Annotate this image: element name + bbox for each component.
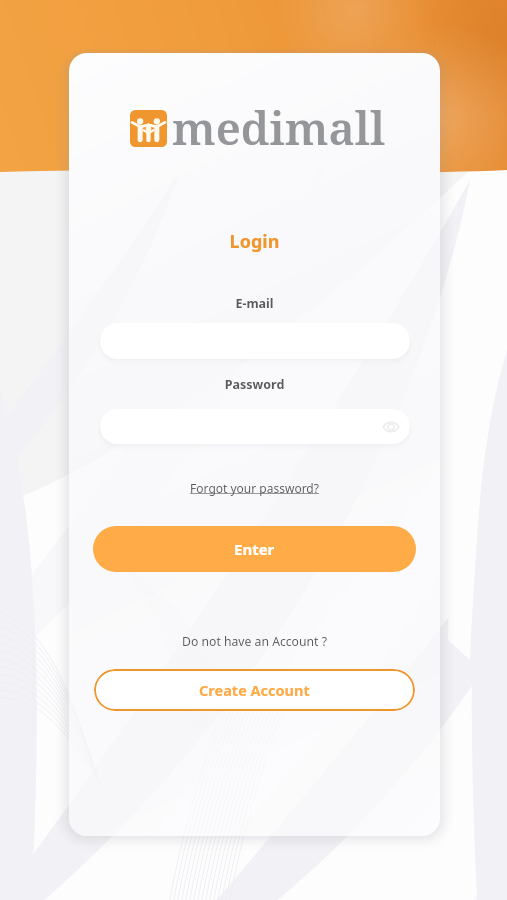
staticText: medimall	[172, 97, 386, 158]
staticText: Password	[69, 376, 440, 393]
staticText: Login	[69, 229, 440, 254]
button[interactable]: Create Account	[94, 669, 415, 711]
button[interactable]: Forgot your password?	[69, 477, 440, 499]
button[interactable]: Enter	[93, 526, 416, 572]
staticText: Create Account	[199, 680, 310, 700]
staticText: Enter	[234, 539, 275, 559]
staticText: Forgot your password?	[190, 480, 319, 496]
staticText: E-mail	[69, 295, 440, 312]
staticText: Do not have an Account ?	[69, 633, 440, 650]
button[interactable]: Show password	[382, 418, 400, 436]
